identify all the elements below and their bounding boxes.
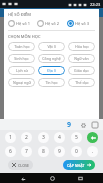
button[interactable]: . — [87, 146, 98, 157]
staticText: 4 — [58, 134, 61, 141]
button[interactable]: CẬP NHẬT — [63, 160, 95, 170]
staticText: Hóa học — [75, 44, 89, 49]
staticText: Hệ số 3 — [75, 21, 89, 26]
button[interactable]: Back — [18, 173, 28, 183]
staticText: CẬP NHẬT — [67, 163, 85, 168]
button[interactable]: 4 — [54, 132, 65, 143]
button[interactable]: 7 — [21, 146, 32, 157]
button[interactable]: Home — [47, 173, 57, 183]
button[interactable]: Ngoại ngữ — [8, 78, 35, 87]
button[interactable]: Hệ số 2 — [37, 20, 65, 27]
staticText: 9 — [67, 120, 72, 130]
staticText: 8 — [42, 148, 45, 155]
staticText: Vật lí — [47, 44, 56, 49]
staticText: CLOSE — [18, 163, 29, 168]
button[interactable]: 6 — [5, 146, 16, 157]
staticText: Lịch sử — [16, 68, 28, 73]
staticText: Ngữ văn — [74, 56, 89, 61]
button[interactable]: 5 — [71, 132, 82, 143]
staticText: Tin học — [45, 80, 58, 85]
staticText: Hệ số 1 — [16, 21, 30, 26]
button[interactable]: Keyboard layout — [91, 121, 99, 129]
staticText: Công nghệ — [42, 56, 61, 61]
button[interactable]: 8 — [38, 146, 49, 157]
staticText: Giáo dục — [74, 68, 89, 73]
button[interactable]: 1 — [5, 132, 16, 143]
staticText: Sinh học — [14, 56, 29, 61]
staticText: 0 — [75, 148, 78, 155]
staticText: 3 — [42, 134, 45, 141]
staticText: CHỌN MÔN HỌC — [8, 34, 41, 39]
button[interactable]: Sinh học — [8, 54, 35, 63]
staticText: 22:23 — [90, 2, 101, 7]
button[interactable]: 3 — [38, 132, 49, 143]
staticText: HỆ SỐ ĐIỂM — [8, 12, 31, 17]
button[interactable]: Recents — [75, 173, 85, 183]
staticText: 5 — [75, 134, 78, 141]
button[interactable]: Backspace — [87, 132, 98, 143]
staticText: 7 — [25, 148, 28, 155]
button[interactable]: Toán học — [8, 42, 35, 51]
staticText: 1 — [9, 134, 12, 141]
staticText: 2 — [25, 134, 28, 141]
button[interactable]: 9 — [54, 146, 65, 157]
staticText: Toán học — [14, 44, 30, 49]
button[interactable]: 0 — [71, 146, 82, 157]
button[interactable]: Tin học — [38, 78, 65, 87]
button[interactable]: CLOSE — [8, 160, 33, 170]
button[interactable]: Địa lí — [38, 66, 65, 75]
button[interactable]: Ngữ văn — [68, 54, 95, 63]
button[interactable]: Hệ số 1 — [8, 20, 35, 27]
button[interactable]: Giáo dục — [68, 66, 95, 75]
staticText: Thể dục — [75, 80, 89, 85]
button[interactable]: Settings — [79, 121, 87, 129]
button[interactable]: Hóa học — [68, 42, 95, 51]
staticText: 6 — [9, 148, 12, 155]
button[interactable]: Hệ số 3 — [67, 20, 95, 27]
staticText: Ngoại ngữ — [13, 80, 31, 85]
staticText: Hệ số 2 — [45, 21, 59, 26]
button[interactable]: Lịch sử — [8, 66, 35, 75]
staticText: Địa lí — [47, 68, 56, 73]
button[interactable]: 2 — [21, 132, 32, 143]
button[interactable]: Thể dục — [68, 78, 95, 87]
staticText: 9 — [58, 148, 61, 155]
staticText: . — [92, 148, 94, 155]
button[interactable]: Vật lí — [38, 42, 65, 51]
button[interactable]: Công nghệ — [38, 54, 65, 63]
